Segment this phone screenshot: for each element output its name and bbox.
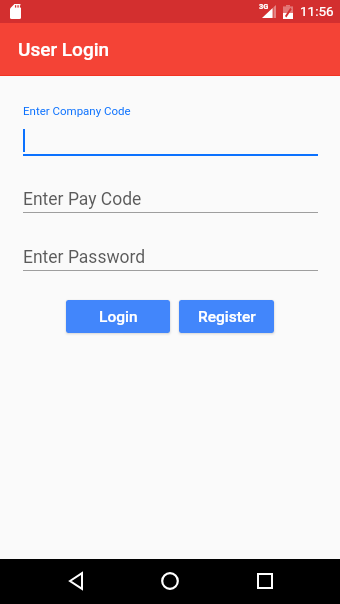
button[interactable]: Enter Pay Code	[23, 185, 318, 213]
button[interactable]: Back	[55, 560, 97, 602]
button[interactable]: Login	[66, 300, 170, 333]
button[interactable]: Enter Password	[23, 243, 318, 271]
button[interactable]: Home	[149, 560, 191, 602]
button[interactable]: Register	[179, 300, 274, 333]
staticText: Register	[198, 308, 256, 326]
staticText: Enter Password	[23, 247, 146, 268]
staticText: 3G	[259, 2, 269, 11]
button[interactable]: Recents	[244, 560, 286, 602]
button[interactable]: Enter Company Code	[23, 100, 318, 156]
staticText: 11:56	[300, 3, 334, 19]
staticText: Enter Company Code	[23, 104, 131, 117]
staticText: User Login	[18, 38, 110, 60]
staticText: Enter Pay Code	[23, 189, 142, 210]
staticText: Login	[99, 308, 138, 326]
